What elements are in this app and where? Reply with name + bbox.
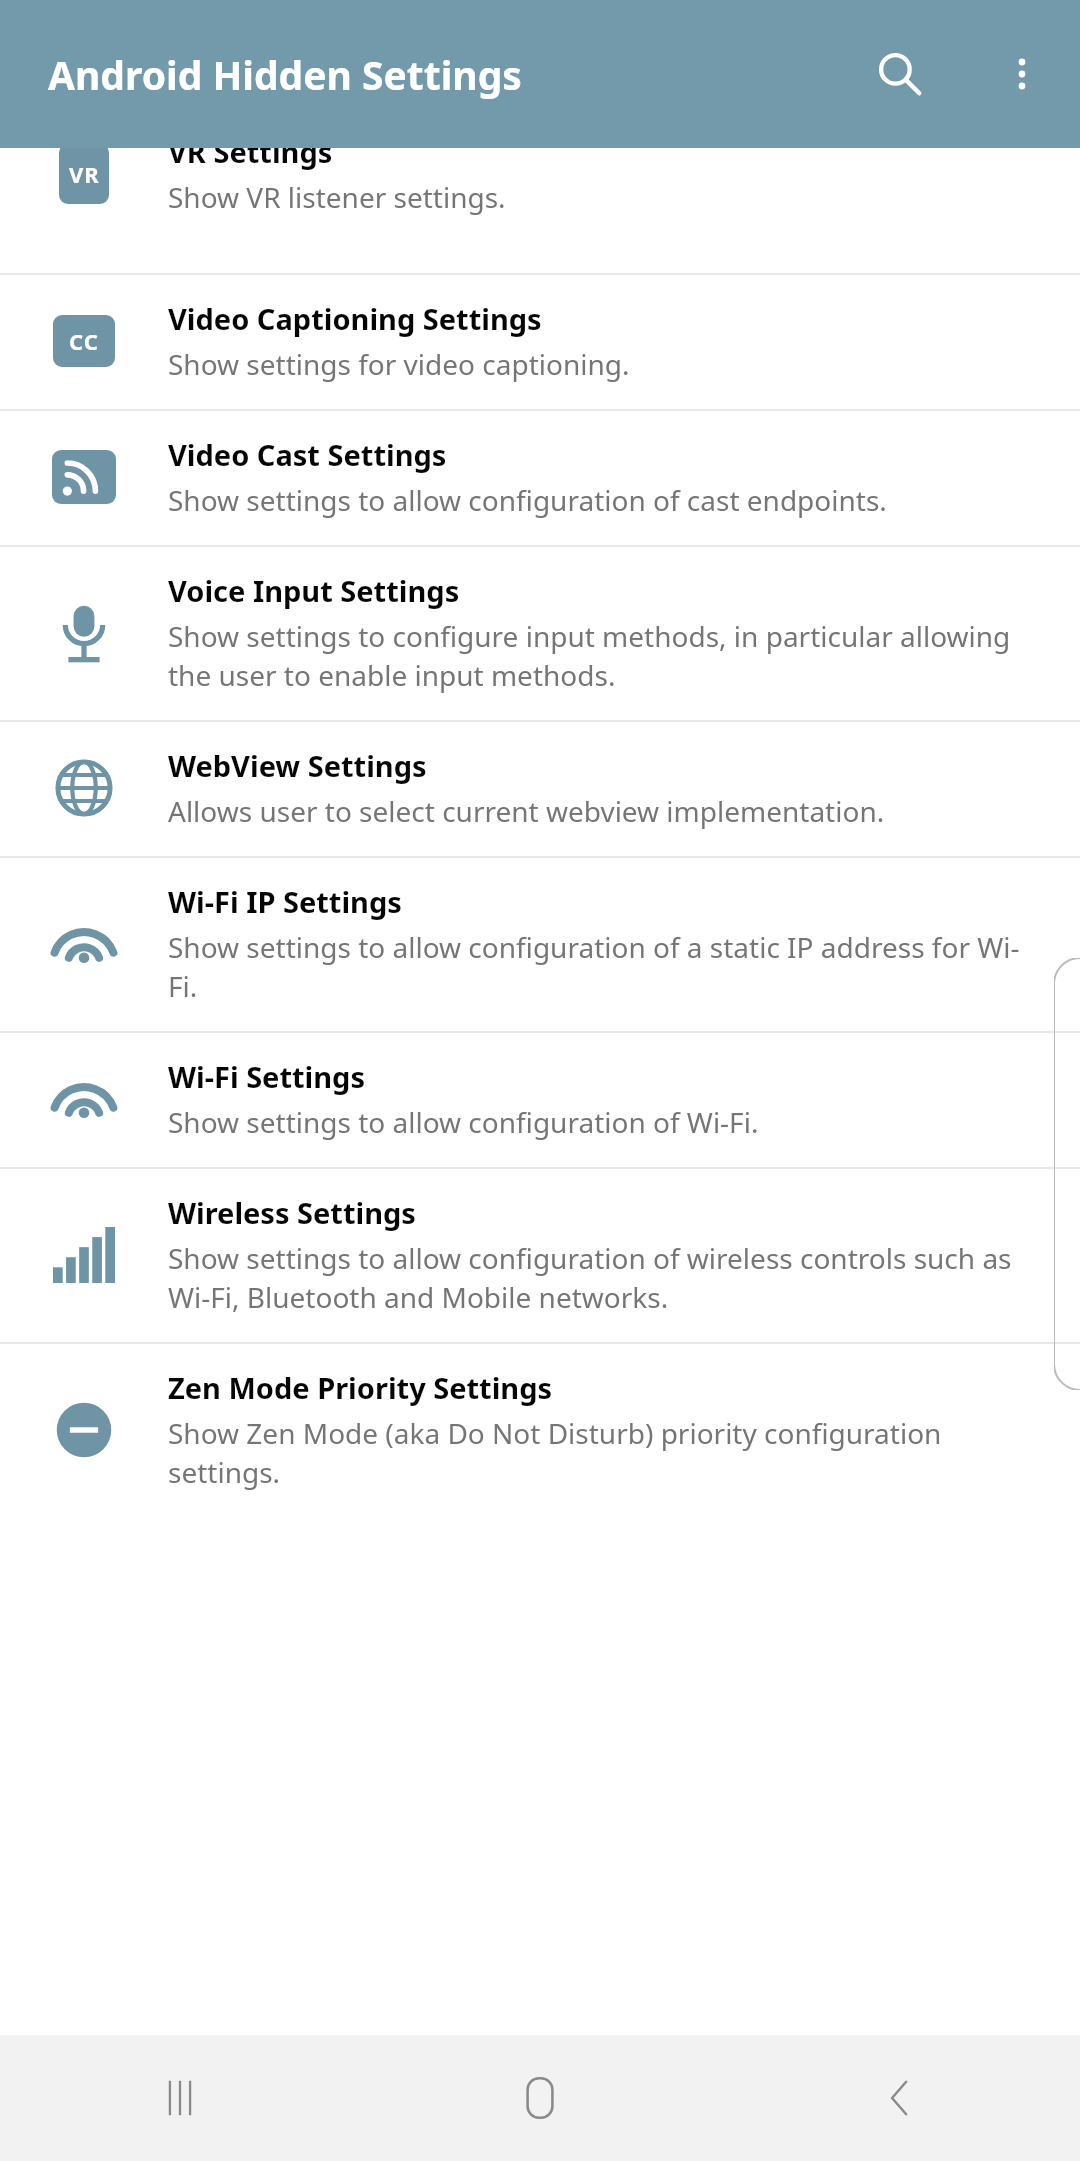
staticText: Show settings to allow configuration of …	[168, 1239, 1036, 1316]
staticText: Show Zen Mode (aka Do Not Disturb) prior…	[168, 1414, 1036, 1491]
staticText: WebView Settings	[168, 746, 427, 785]
button[interactable]: Wi-Fi Settings	[0, 1033, 1080, 1167]
staticText: Show settings for video captioning.	[168, 345, 630, 383]
staticText: CC	[69, 326, 99, 356]
button[interactable]: Wireless Settings	[0, 1169, 1080, 1342]
staticText: Show VR listener settings.	[168, 178, 506, 215]
staticText: Show settings to allow configuration of …	[168, 481, 887, 519]
staticText: Wireless Settings	[168, 1193, 416, 1232]
staticText: Video Captioning Settings	[168, 299, 542, 338]
button[interactable]: Voice Input Settings	[0, 547, 1080, 720]
staticText: Wi-Fi Settings	[168, 1057, 365, 1096]
staticText: Video Cast Settings	[168, 435, 447, 474]
staticText: Allows user to select current webview im…	[168, 792, 885, 830]
button[interactable]: Wi-Fi IP Settings	[0, 858, 1080, 1031]
button[interactable]: Video Cast Settings	[0, 411, 1080, 545]
button[interactable]: Home	[360, 2035, 720, 2161]
staticText: Wi-Fi IP Settings	[168, 882, 402, 921]
button[interactable]: More options	[974, 26, 1070, 122]
button[interactable]: WebView Settings	[0, 722, 1080, 856]
button[interactable]: Recents	[0, 2035, 360, 2161]
staticText: VR Settings	[168, 148, 333, 171]
staticText: Show settings to allow configuration of …	[168, 1103, 759, 1141]
button[interactable]: CC	[0, 275, 1080, 409]
staticText: Voice Input Settings	[168, 571, 460, 610]
staticText: Show settings to allow configuration of …	[168, 928, 1036, 1005]
button[interactable]: Search	[852, 26, 948, 122]
staticText: Zen Mode Priority Settings	[168, 1368, 553, 1407]
staticText: VR	[69, 159, 100, 189]
button[interactable]: Zen Mode Priority Settings	[0, 1344, 1080, 1517]
staticText: Show settings to configure input methods…	[168, 617, 1036, 694]
staticText: Android Hidden Settings	[48, 48, 522, 101]
button[interactable]: VR	[0, 148, 1080, 235]
button[interactable]: Back	[720, 2035, 1080, 2161]
